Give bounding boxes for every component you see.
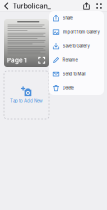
button[interactable]: Send to Mail bbox=[49, 67, 104, 81]
staticText: Import from Gallery bbox=[62, 29, 99, 34]
button[interactable]: Rename bbox=[49, 53, 104, 67]
button[interactable]: Share bbox=[80, 0, 93, 12]
staticText: Share bbox=[62, 15, 72, 20]
staticText: Send to Mail bbox=[62, 71, 85, 76]
button[interactable]: Page 1 bbox=[4, 19, 49, 67]
staticText: Rename bbox=[62, 57, 77, 62]
staticText: Save to Gallery bbox=[62, 43, 89, 48]
button[interactable]: Expand page bbox=[37, 56, 46, 65]
button[interactable]: Import from Gallery bbox=[49, 25, 104, 39]
button[interactable]: Back bbox=[0, 0, 12, 12]
button[interactable]: More options bbox=[93, 0, 107, 12]
button[interactable]: Save to Gallery bbox=[49, 39, 104, 53]
staticText: Delete bbox=[62, 85, 73, 90]
button[interactable]: Share bbox=[49, 11, 104, 25]
staticText: Tap to Add New bbox=[10, 98, 43, 103]
button[interactable]: Delete bbox=[49, 81, 104, 95]
button[interactable]: Tap to Add New bbox=[4, 71, 49, 119]
staticText: Turbolican_25062623 bbox=[12, 2, 86, 10]
staticText: Page 1 bbox=[7, 57, 27, 64]
